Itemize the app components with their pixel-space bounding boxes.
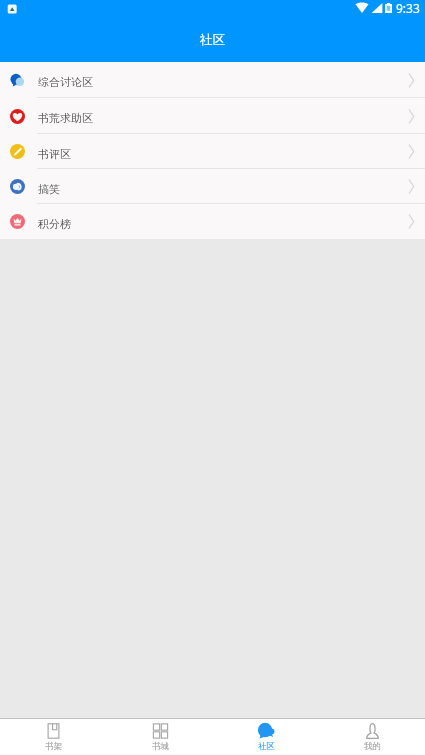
staticText: 我的 — [364, 741, 381, 752]
staticText: 书评区 — [38, 147, 71, 161]
button[interactable]: 书城 — [107, 719, 213, 755]
staticText: 积分榜 — [38, 217, 71, 231]
staticText: 搞笑 — [38, 182, 60, 196]
staticText: 书荒求助区 — [38, 111, 93, 125]
button[interactable]: 书荒求助区 — [0, 98, 425, 134]
button[interactable]: 积分榜 — [0, 204, 425, 239]
button[interactable]: 搞笑 — [0, 169, 425, 204]
staticText: 社区 — [200, 32, 225, 48]
staticText: 综合讨论区 — [38, 75, 93, 89]
staticText: 社区 — [258, 741, 275, 752]
staticText: 书架 — [45, 741, 62, 752]
staticText: 9:33 — [396, 0, 420, 16]
button[interactable]: 综合讨论区 — [0, 62, 425, 98]
button[interactable]: 我的 — [319, 719, 425, 755]
button[interactable]: 书架 — [0, 719, 107, 755]
button[interactable]: 书评区 — [0, 134, 425, 169]
button[interactable]: 社区 — [213, 719, 319, 755]
staticText: 书城 — [152, 741, 169, 752]
